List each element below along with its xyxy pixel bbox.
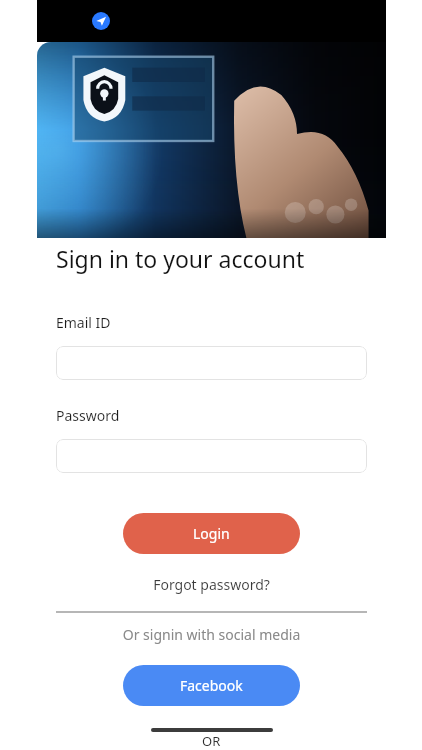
staticText: Email ID bbox=[56, 313, 111, 332]
button[interactable]: Facebook bbox=[123, 665, 300, 706]
staticText: Sign in to your account bbox=[56, 243, 305, 274]
button[interactable]: Login bbox=[123, 513, 300, 554]
staticText: OR bbox=[202, 732, 221, 750]
staticText: Login bbox=[193, 524, 230, 543]
button[interactable]: Forgot password? bbox=[37, 575, 386, 594]
other: Location active bbox=[92, 12, 110, 30]
staticText: Or signin with social media bbox=[37, 625, 386, 644]
button[interactable] bbox=[56, 439, 367, 473]
staticText: Password bbox=[56, 406, 120, 425]
staticText: Facebook bbox=[180, 676, 243, 695]
button[interactable] bbox=[56, 346, 367, 380]
